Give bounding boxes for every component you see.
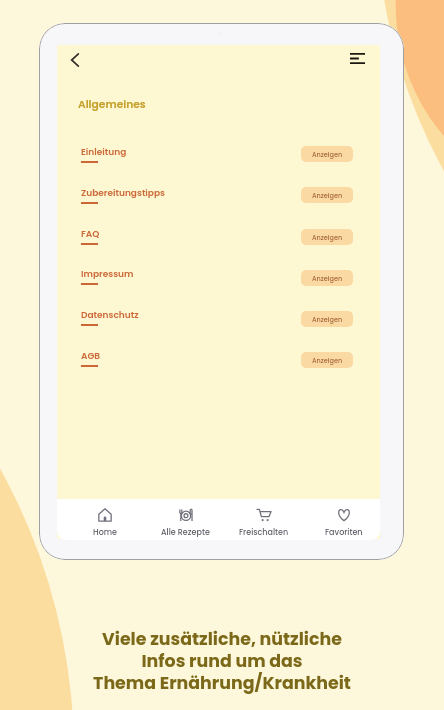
button[interactable]: Zubereitungstipps <box>81 187 165 204</box>
staticText: FAQ <box>81 228 100 241</box>
button[interactable]: Alle Rezepte <box>147 499 223 540</box>
button[interactable]: Back <box>61 46 89 74</box>
button[interactable]: Einleitung <box>81 146 127 163</box>
button[interactable]: Anzeigen <box>301 352 353 368</box>
staticText: Anzeigen <box>312 233 343 242</box>
button[interactable]: Anzeigen <box>301 146 353 162</box>
staticText: Favoriten <box>325 527 363 538</box>
staticText: Freischalten <box>239 527 289 538</box>
staticText: Einleitung <box>81 146 127 159</box>
staticText: Alle Rezepte <box>161 527 210 538</box>
staticText: Allgemeines <box>78 97 146 112</box>
staticText: Impressum <box>81 268 134 281</box>
button[interactable]: Impressum <box>81 268 134 285</box>
button[interactable]: Favoriten <box>306 499 380 540</box>
staticText: Datenschutz <box>81 309 139 322</box>
staticText: Anzeigen <box>312 150 343 159</box>
staticText: Anzeigen <box>312 274 343 283</box>
staticText: Zubereitungstipps <box>81 187 165 200</box>
staticText: Home <box>93 527 117 538</box>
button[interactable]: FAQ <box>81 228 100 245</box>
staticText: AGB <box>81 350 101 363</box>
staticText: Viele zusätzliche, nützliche Infos rund … <box>93 627 351 695</box>
button[interactable]: Anzeigen <box>301 270 353 286</box>
button[interactable]: AGB <box>81 350 101 367</box>
staticText: Anzeigen <box>312 191 343 200</box>
button[interactable]: Home <box>67 499 143 540</box>
button[interactable]: Anzeigen <box>301 229 353 245</box>
staticText: Anzeigen <box>312 356 343 365</box>
button[interactable]: Anzeigen <box>301 311 353 327</box>
button[interactable]: Freischalten <box>226 499 302 540</box>
button[interactable]: Menu <box>343 45 371 72</box>
staticText: Anzeigen <box>312 315 343 324</box>
button[interactable]: Anzeigen <box>301 187 353 203</box>
button[interactable]: Datenschutz <box>81 309 139 326</box>
